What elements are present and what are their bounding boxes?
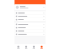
button[interactable] [14, 5, 45, 10]
button[interactable] [14, 33, 45, 36]
button[interactable] [14, 15, 45, 18]
button[interactable] [14, 29, 45, 33]
button[interactable] [14, 23, 45, 26]
button[interactable] [14, 26, 45, 29]
button[interactable] [14, 18, 45, 21]
button[interactable]: Tab 2 [22, 45, 30, 49]
button[interactable] [14, 11, 45, 15]
button[interactable]: Tab 4 [38, 45, 46, 49]
button[interactable]: Tab 3 [30, 45, 38, 49]
button[interactable]: Tab 1 [14, 45, 22, 49]
